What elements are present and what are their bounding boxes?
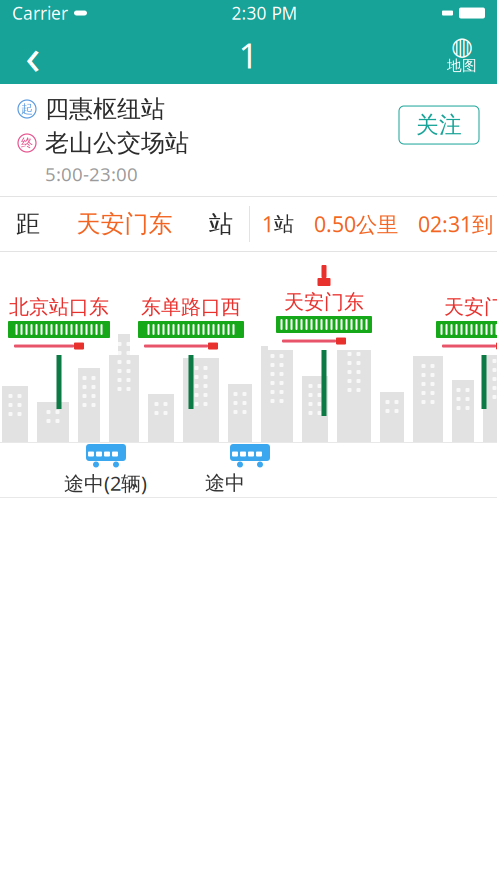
staticText: 终: [21, 136, 33, 150]
staticText: 02:31到: [418, 210, 493, 238]
staticText: 站: [209, 209, 233, 239]
button[interactable]: Back: [8, 32, 58, 78]
staticText: Carrier: [12, 1, 68, 24]
staticText: 四惠枢纽站: [45, 94, 165, 124]
staticText: ‹: [25, 21, 41, 89]
button[interactable]: 地图: [435, 32, 489, 78]
button[interactable]: 关注: [399, 106, 479, 144]
staticText: 天安门东: [284, 290, 364, 314]
staticText: 1: [262, 210, 274, 238]
staticText: 2:30 PM: [231, 1, 297, 24]
staticText: 老山公交场站: [45, 128, 189, 158]
staticText: 北京站口东: [9, 295, 109, 319]
staticText: 0.50公里: [314, 210, 398, 238]
staticText: 关注: [416, 111, 462, 139]
staticText: 途中: [205, 471, 245, 495]
staticText: 距: [16, 209, 40, 239]
staticText: 5:00-23:00: [45, 162, 138, 186]
staticText: 天安门西: [444, 295, 497, 319]
staticText: 起: [21, 102, 33, 116]
staticText: 地图: [447, 56, 477, 74]
staticText: ◍: [451, 32, 473, 60]
staticText: 途中(2辆): [64, 470, 147, 496]
staticText: 1: [238, 32, 258, 78]
staticText: 天安门东: [76, 209, 172, 239]
staticText: 站: [274, 212, 294, 236]
staticText: 东单路口西: [141, 295, 241, 319]
